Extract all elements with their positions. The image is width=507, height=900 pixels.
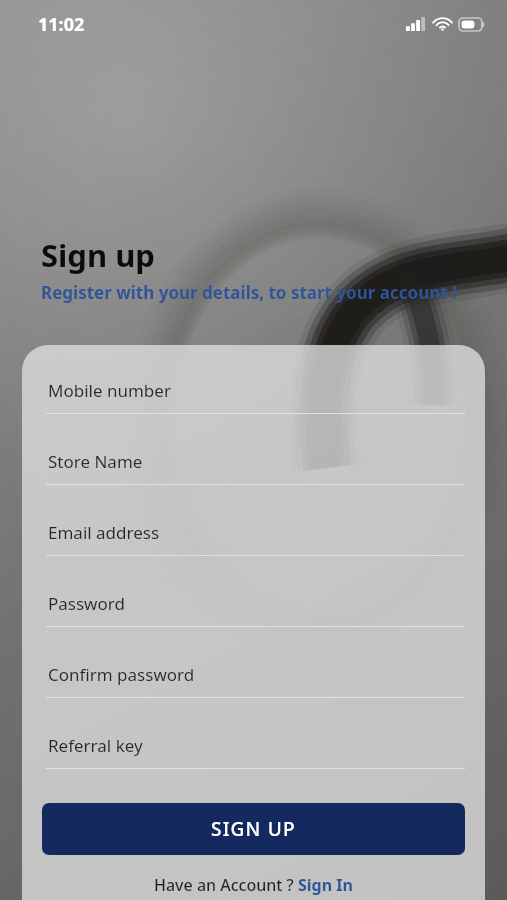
button[interactable]: Mobile number	[22, 367, 485, 438]
button[interactable]: Password	[22, 580, 485, 651]
button[interactable]: Referral key	[22, 722, 485, 793]
button[interactable]: Store Name	[22, 438, 485, 509]
button[interactable]: Confirm password	[22, 651, 485, 722]
staticText: Store Name	[48, 450, 143, 473]
staticText: 11:02	[38, 12, 85, 37]
button[interactable]: Email address	[22, 509, 485, 580]
button[interactable]: Have an Account ?	[22, 874, 485, 896]
staticText: Have an Account ?	[154, 874, 298, 896]
staticText: SIGN UP	[211, 816, 296, 842]
staticText: Referral key	[48, 734, 143, 757]
staticText: Mobile number	[48, 379, 171, 402]
button[interactable]: SIGN UP	[42, 803, 465, 855]
staticText: Password	[48, 592, 125, 615]
staticText: Register with your details, to start you…	[41, 281, 457, 304]
staticText: Sign up	[41, 234, 155, 276]
staticText: Email address	[48, 521, 160, 544]
staticText: Sign In	[298, 874, 353, 896]
staticText: Confirm password	[48, 663, 195, 686]
